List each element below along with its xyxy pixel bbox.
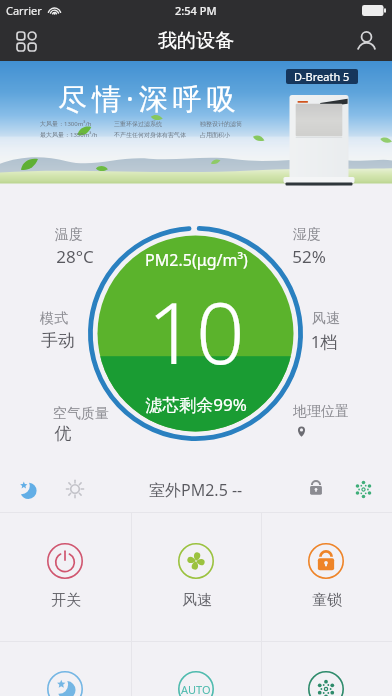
staticText: 28°C bbox=[15, 245, 135, 268]
staticText: 温度 bbox=[9, 226, 129, 244]
staticText: 室外PM2.5 -- bbox=[149, 479, 243, 501]
staticText: 风速 bbox=[266, 310, 386, 328]
staticText: PM2.5(μg/m³) bbox=[145, 249, 248, 271]
button[interactable]: Anion bbox=[353, 479, 374, 500]
staticText: 我的设备 bbox=[158, 29, 234, 53]
staticText: 滤芯剩余99% bbox=[145, 393, 247, 416]
button[interactable]: 开关 bbox=[0, 513, 131, 641]
staticText: 地理位置 bbox=[261, 403, 381, 421]
staticText: 优 bbox=[3, 423, 123, 444]
staticText: 风速 bbox=[182, 591, 212, 610]
staticText: 空气质量 bbox=[21, 405, 141, 423]
staticText: 不产生任何对身体有害气体 bbox=[114, 131, 186, 139]
button[interactable]: 风速 bbox=[131, 513, 262, 641]
staticText: 模式 bbox=[0, 310, 114, 328]
staticText: 开关 bbox=[51, 591, 81, 610]
staticText: 童锁 bbox=[312, 591, 342, 610]
button[interactable]: AUTO bbox=[131, 641, 262, 696]
button[interactable]: 童锁 bbox=[261, 513, 392, 641]
button[interactable]: Location bbox=[296, 426, 307, 437]
staticText: 10 bbox=[147, 273, 245, 389]
button[interactable]: 睡眠 bbox=[0, 641, 131, 696]
staticText: 占用面积小 bbox=[200, 131, 230, 139]
button[interactable]: 负离子 bbox=[261, 641, 392, 696]
staticText: 独整设计的滤筒 bbox=[200, 120, 242, 128]
staticText: 三重环保过滤系统 bbox=[114, 120, 162, 128]
staticText: 最大风量：1350m³/h bbox=[40, 131, 98, 139]
staticText: AUTO bbox=[181, 682, 211, 696]
staticText: 湿度 bbox=[247, 226, 367, 244]
staticText: 尽情·深呼吸 bbox=[58, 78, 241, 118]
staticText: 1档 bbox=[264, 330, 384, 353]
staticText: 手动 bbox=[0, 330, 118, 351]
staticText: 52% bbox=[249, 245, 369, 268]
staticText: 2:54 PM bbox=[175, 3, 217, 18]
button[interactable]: Devices bbox=[8, 23, 44, 59]
staticText: D-Breath 5 bbox=[294, 69, 350, 84]
button[interactable]: Night mode bbox=[17, 479, 37, 499]
staticText: Carrier bbox=[6, 3, 42, 18]
staticText: 大风量：1300m³/h bbox=[40, 120, 92, 128]
button[interactable]: Account bbox=[348, 23, 384, 59]
button[interactable]: Brightness bbox=[66, 480, 84, 498]
button[interactable]: Child lock bbox=[308, 480, 324, 496]
